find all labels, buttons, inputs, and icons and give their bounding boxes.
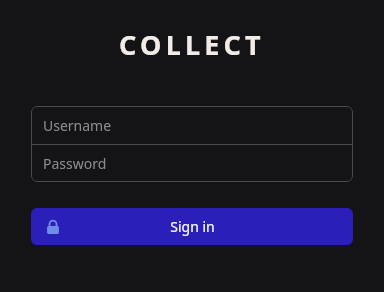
staticText: Username [43, 116, 112, 135]
button[interactable]: Password [31, 145, 353, 182]
staticText: COLLECT [119, 26, 265, 60]
other: Lock [45, 219, 61, 235]
button[interactable]: Username [31, 106, 353, 144]
staticText: Password [43, 154, 107, 173]
staticText: Sign in [170, 217, 215, 236]
button[interactable]: Sign in [31, 208, 353, 245]
